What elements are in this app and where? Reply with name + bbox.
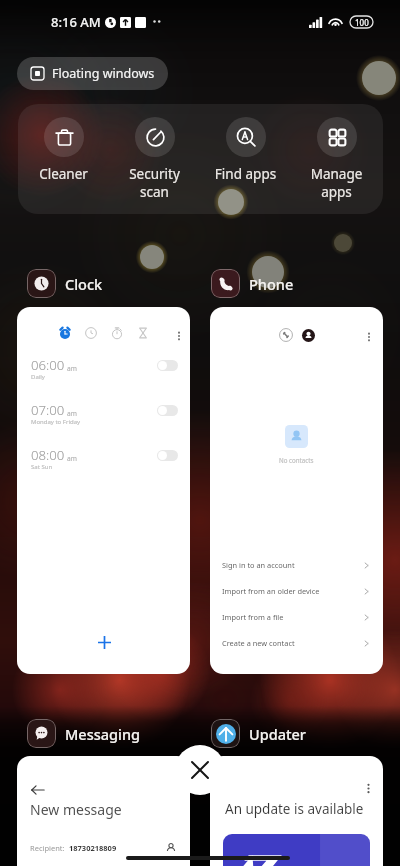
staticText: 100 xyxy=(355,17,369,28)
staticText: 06:00 xyxy=(31,356,65,374)
button[interactable]: Cleaner xyxy=(18,117,109,183)
staticText: am xyxy=(67,364,77,373)
button[interactable]: More options xyxy=(210,756,383,866)
staticText: 8:16 AM xyxy=(51,13,101,31)
staticText: Phone xyxy=(249,274,294,294)
button[interactable]: Toggle alarm 07:00 xyxy=(157,405,178,416)
staticText: Sign in to an account xyxy=(222,560,295,570)
button[interactable]: Back xyxy=(17,756,190,866)
staticText: am xyxy=(67,454,77,463)
staticText: Find apps xyxy=(200,165,291,183)
button[interactable]: Find apps xyxy=(200,117,291,183)
button[interactable]: Manage apps xyxy=(291,117,382,201)
staticText: 18730218809 xyxy=(69,843,117,853)
button[interactable]: Pick contact xyxy=(164,841,178,855)
button[interactable]: Toggle alarm 08:00 xyxy=(157,450,178,461)
button[interactable]: 06:00 xyxy=(17,355,190,385)
staticText: No contacts xyxy=(279,456,314,464)
staticText: Messaging xyxy=(65,724,141,744)
staticText: An update is available xyxy=(225,800,364,818)
button[interactable]: Back xyxy=(25,777,51,803)
staticText: Import from an older device xyxy=(222,586,320,596)
staticText: Cleaner xyxy=(18,165,109,183)
button[interactable]: Create a new contact xyxy=(210,630,383,656)
button[interactable]: Close all xyxy=(175,745,225,795)
button[interactable]: Import from an older device xyxy=(210,578,383,604)
staticText: Create a new contact xyxy=(222,638,295,648)
button[interactable]: Sign in to an account xyxy=(210,552,383,578)
staticText: Recipient: xyxy=(30,843,65,853)
staticText: Updater xyxy=(249,724,306,744)
button[interactable]: Floating windows xyxy=(17,57,168,90)
staticText: Clock xyxy=(65,274,103,294)
staticText: 08:00 xyxy=(31,446,65,464)
button[interactable]: More options xyxy=(17,307,190,674)
staticText: Sat Sun xyxy=(31,463,53,471)
staticText: New message xyxy=(30,800,122,819)
staticText: Floating windows xyxy=(52,65,155,82)
staticText: Security scan xyxy=(109,165,200,201)
button[interactable]: Updater xyxy=(211,719,306,748)
staticText: 07:00 xyxy=(31,401,65,419)
button[interactable]: Clock xyxy=(27,269,103,298)
button[interactable]: Add alarm xyxy=(91,629,117,655)
button[interactable]: More options xyxy=(360,328,378,346)
button[interactable]: 07:00 xyxy=(17,400,190,430)
button[interactable]: Import from a file xyxy=(210,604,383,630)
button[interactable]: More options xyxy=(358,778,378,798)
staticText: Daily xyxy=(31,373,45,381)
button[interactable]: 08:00 xyxy=(17,445,190,475)
button[interactable]: Security scan xyxy=(109,117,200,201)
staticText: Manage apps xyxy=(291,165,382,201)
button[interactable]: Phone xyxy=(211,269,294,298)
button[interactable]: More options xyxy=(170,327,188,345)
button[interactable]: Messaging xyxy=(27,719,141,748)
staticText: Import from a file xyxy=(222,612,284,622)
staticText: am xyxy=(67,409,77,418)
staticText: Monday to Friday xyxy=(31,418,81,426)
button[interactable]: Toggle alarm 06:00 xyxy=(157,360,178,371)
button[interactable]: More options xyxy=(210,307,383,674)
